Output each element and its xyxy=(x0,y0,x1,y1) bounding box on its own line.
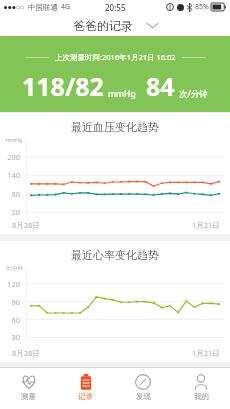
button[interactable]: 最近血压变化趋势 xyxy=(0,113,230,234)
other: Switch profile xyxy=(147,22,158,29)
button[interactable]: 我的 xyxy=(172,368,230,409)
staticText: 20 xyxy=(2,207,20,217)
staticText: 最近心率变化趋势 xyxy=(71,248,159,262)
button[interactable]: 最近心率变化趋势 xyxy=(0,241,230,362)
staticText: 118/82 xyxy=(22,69,104,103)
staticText: 140 xyxy=(2,170,20,180)
staticText: 85% xyxy=(195,2,209,12)
button[interactable]: 爸爸的记录 xyxy=(65,16,166,35)
staticText: 8月28日 xyxy=(12,220,40,230)
staticText: 爸爸的记录 xyxy=(73,18,133,33)
staticText: 30 xyxy=(2,332,20,342)
other: 我的 xyxy=(193,374,209,390)
staticText: mmHg xyxy=(6,137,23,144)
button[interactable]: 测量 xyxy=(0,368,57,409)
staticText: 60 xyxy=(2,315,20,325)
staticText: 90 xyxy=(2,297,20,307)
staticText: 中国联通 xyxy=(28,3,58,12)
staticText: 我的 xyxy=(194,392,209,401)
other: 测量 xyxy=(21,374,37,390)
staticText: 84 xyxy=(146,69,175,103)
staticText: 120 xyxy=(2,279,20,289)
staticText: 1月21日 xyxy=(192,220,220,230)
staticText: 4G xyxy=(61,2,71,12)
staticText: 80 xyxy=(2,189,20,199)
staticText: 次/分钟 xyxy=(179,88,208,100)
button[interactable]: 发现 xyxy=(114,368,172,409)
button[interactable]: 记录 xyxy=(57,368,114,409)
other: 记录 xyxy=(78,374,94,390)
staticText: 记录 xyxy=(78,392,93,401)
staticText: 最近血压变化趋势 xyxy=(71,120,159,134)
staticText: 次/分钟 xyxy=(6,265,23,272)
staticText: mmHg xyxy=(108,88,136,100)
staticText: 8月28日 xyxy=(12,348,40,358)
staticText: 20:55 xyxy=(105,2,126,13)
staticText: 200 xyxy=(2,152,20,162)
staticText: 测量 xyxy=(21,392,36,401)
other: 发现 xyxy=(135,374,151,390)
staticText: 发现 xyxy=(136,392,151,401)
staticText: 上次测量时间:2016年1月21日 16:02 xyxy=(55,52,176,62)
staticText: 1月21日 xyxy=(192,348,220,358)
